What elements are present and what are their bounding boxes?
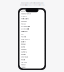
staticText: Emergency <box>21 38 30 40</box>
staticText: Camera <box>21 51 27 53</box>
button[interactable]: Accessibility <box>20 28 44 30</box>
staticText: Shortcuts <box>21 56 28 58</box>
staticText: and we will attach a screenshot for you <box>19 4 44 6</box>
button[interactable]: Emergency <box>20 38 44 40</box>
button[interactable]: Control <box>20 48 44 51</box>
button[interactable]: Sounds <box>20 20 44 23</box>
button[interactable]: Face ID <box>20 35 44 38</box>
button[interactable]: Siri <box>20 33 44 35</box>
staticText: Wallpaper <box>21 31 28 32</box>
button[interactable]: Home <box>20 46 44 48</box>
staticText: Screen Time <box>21 26 30 27</box>
staticText: Reset <box>21 69 25 71</box>
staticText: Appearance <box>21 13 31 15</box>
staticText: Focus <box>21 23 26 25</box>
button[interactable]: Appearance <box>20 12 44 15</box>
button[interactable]: Privacy <box>20 15 44 17</box>
staticText: Report an issue from inside the app <box>20 2 43 4</box>
staticText: General <box>21 10 27 12</box>
button[interactable]: Focus <box>20 23 44 25</box>
button[interactable]: Photos <box>20 53 44 56</box>
staticText: Legal <box>21 66 25 68</box>
button[interactable]: Storage <box>20 61 44 63</box>
staticText: Storage <box>21 61 27 63</box>
button[interactable]: Battery <box>20 40 44 43</box>
button[interactable]: Reset <box>20 68 44 71</box>
button[interactable]: Legal <box>20 66 44 68</box>
button[interactable]: Camera <box>20 51 44 53</box>
staticText: Battery <box>21 41 26 43</box>
button[interactable]: About <box>20 63 44 66</box>
staticText: Health <box>21 59 25 60</box>
button[interactable]: Display <box>20 43 44 46</box>
staticText: Accessibility <box>21 28 29 30</box>
staticText: Control <box>21 48 26 50</box>
button[interactable]: Health <box>20 58 44 61</box>
staticText: Privacy <box>21 15 27 17</box>
staticText: About <box>21 64 25 66</box>
button[interactable]: Screen Time <box>20 25 44 28</box>
button[interactable]: Notifications <box>20 18 44 20</box>
staticText: Notifications <box>21 18 29 20</box>
button[interactable]: Shortcuts <box>20 56 44 58</box>
button[interactable]: General <box>20 10 44 12</box>
staticText: Face ID <box>21 36 26 38</box>
staticText: Home <box>21 46 25 48</box>
staticText: Photos <box>21 54 26 55</box>
staticText: Siri <box>21 33 23 35</box>
staticText: Display <box>21 43 26 45</box>
staticText: Sounds <box>21 20 27 22</box>
button[interactable]: Wallpaper <box>20 30 44 33</box>
